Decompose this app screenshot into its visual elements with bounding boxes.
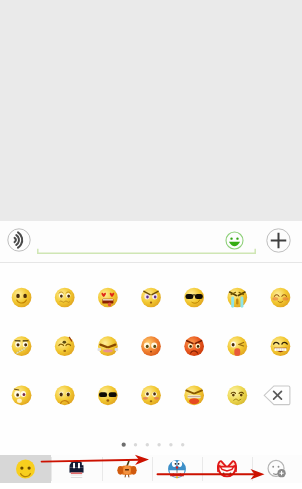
button[interactable]: Sticker pack 6 xyxy=(252,455,302,483)
button[interactable]: Emoji 15 xyxy=(0,371,44,420)
button[interactable]: Emoji 10 xyxy=(87,322,130,371)
button[interactable] xyxy=(37,221,256,263)
button[interactable]: Emoji 19 xyxy=(173,371,216,420)
button[interactable]: Emoji 9 xyxy=(44,322,87,371)
button[interactable]: Emoji 20 xyxy=(216,371,259,420)
button[interactable]: Sticker pack 4 xyxy=(152,455,202,483)
button[interactable]: Sticker pack 5 xyxy=(202,455,252,483)
button[interactable]: Emoji 3 xyxy=(87,273,130,322)
button[interactable]: Backspace xyxy=(259,371,302,420)
button[interactable]: Emoji 16 xyxy=(44,371,87,420)
button[interactable]: Emoji 5 xyxy=(173,273,216,322)
button[interactable]: Voice input xyxy=(7,228,31,252)
button[interactable]: Emoji 14 xyxy=(259,322,302,371)
button[interactable]: Emoji keyboard xyxy=(225,231,244,250)
button[interactable]: Sticker pack 1 xyxy=(0,455,51,483)
button[interactable]: Emoji 7 xyxy=(259,273,302,322)
button[interactable]: Emoji 6 xyxy=(216,273,259,322)
button[interactable]: Emoji 2 xyxy=(44,273,87,322)
button[interactable]: Emoji 11 xyxy=(130,322,173,371)
button[interactable]: Emoji 18 xyxy=(130,371,173,420)
button[interactable]: Emoji 13 xyxy=(216,322,259,371)
button[interactable]: More options xyxy=(266,228,291,253)
button[interactable]: Emoji 4 xyxy=(130,273,173,322)
button[interactable]: Sticker pack 2 xyxy=(51,455,102,483)
button[interactable]: Emoji 12 xyxy=(173,322,216,371)
button[interactable]: Emoji 17 xyxy=(87,371,130,420)
button[interactable]: Emoji 1 xyxy=(0,273,44,322)
button[interactable]: Sticker pack 3 xyxy=(102,455,152,483)
button[interactable]: Emoji 8 xyxy=(0,322,44,371)
